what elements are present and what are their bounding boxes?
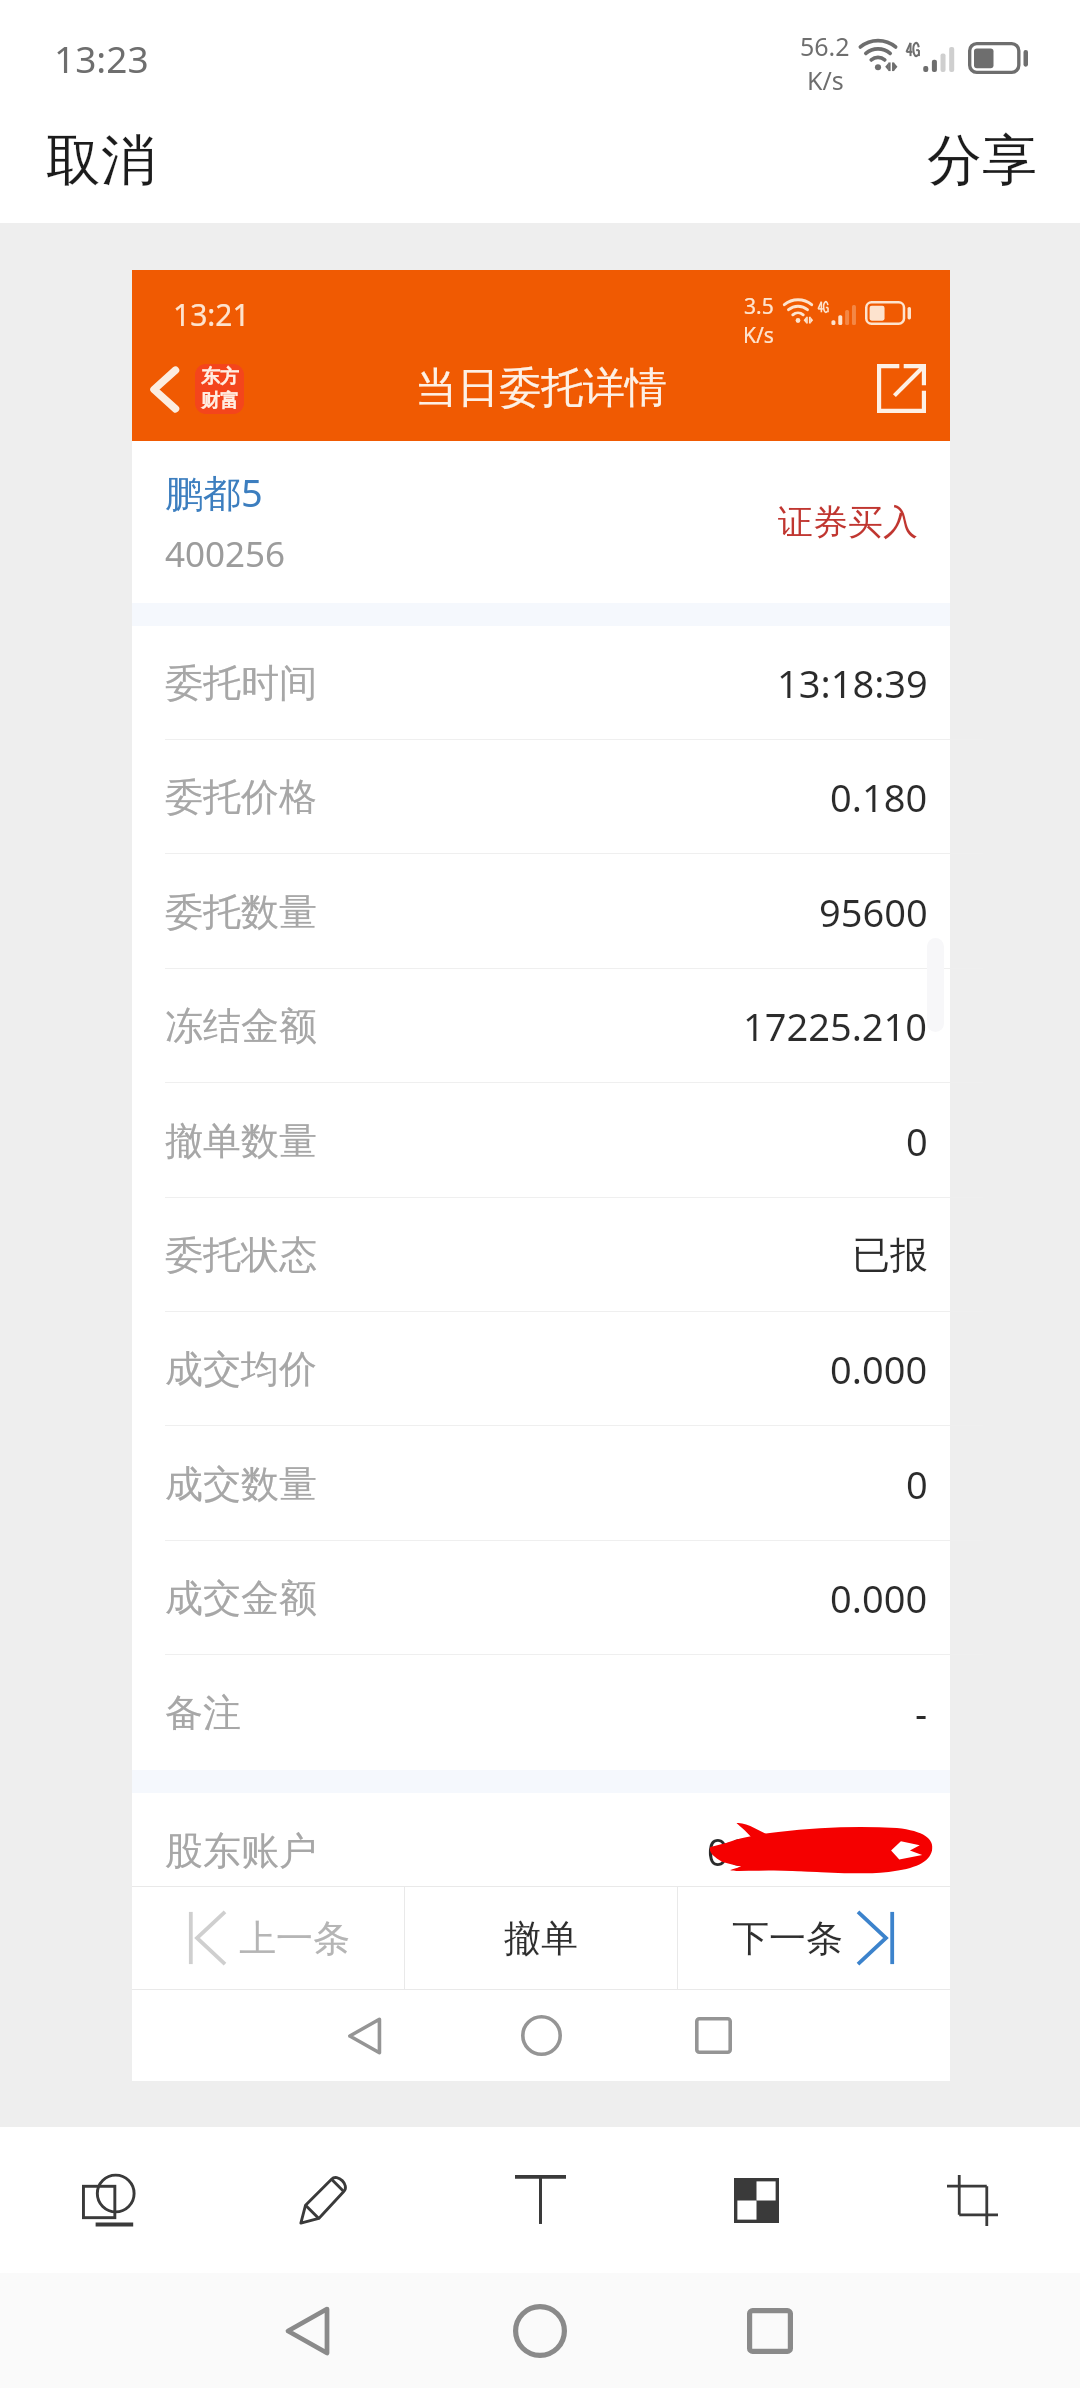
staticText: 13:18:39 [777,657,928,709]
button[interactable]: Crop [864,2127,1080,2273]
staticText: 委托价格 [165,773,317,821]
button[interactable]: Shapes [0,2127,216,2273]
staticText: 13:21 [173,294,250,335]
staticText: 撤单数量 [165,1117,317,1165]
staticText: 股东账户 [165,1827,317,1875]
staticText: 东方 [201,365,239,389]
staticText: 08 [707,1825,751,1877]
staticText: 56.2 [800,29,850,63]
staticText: 分享 [927,126,1037,195]
staticText: 0.000 [830,1572,928,1624]
button[interactable]: 下一条 [678,1887,950,1989]
staticText: 冻结金额 [165,1002,317,1050]
button[interactable]: Back [257,2280,359,2382]
staticText: 17225.210 [743,1000,928,1052]
staticText: 财富 [201,389,239,413]
button[interactable]: Share [861,352,950,425]
staticText: 0 [906,1115,928,1167]
staticText: 备注 [165,1689,241,1737]
staticText: 0 [906,1458,928,1510]
staticText: 成交数量 [165,1460,317,1508]
staticText: 鹏都5 [165,466,263,518]
button[interactable]: Recents [721,2282,819,2380]
staticText: 下一条 [732,1915,843,1962]
staticText: 13:23 [54,33,149,83]
button[interactable]: Home [487,2278,593,2384]
staticText: 成交金额 [165,1574,317,1622]
staticText: 取消 [46,126,156,195]
button[interactable]: 取消 [8,112,194,209]
button[interactable]: Back [132,356,254,422]
staticText: 委托状态 [165,1231,317,1279]
staticText: 400256 [165,530,286,578]
button[interactable]: Draw [216,2127,432,2273]
staticText: 已报 [852,1231,928,1279]
button[interactable]: Text [432,2127,648,2273]
staticText: 3.5 [744,292,774,321]
button[interactable]: Mosaic [648,2127,864,2273]
staticText: 0.000 [830,1343,928,1395]
staticText: 上一条 [239,1915,350,1962]
staticText: K/s [743,321,774,350]
staticText: 撤单 [504,1915,578,1962]
button[interactable]: 分享 [889,112,1075,209]
staticText: 成交均价 [165,1345,317,1393]
staticText: 证券买入 [778,500,918,544]
button[interactable]: 上一条 [132,1887,404,1989]
staticText: 当日委托详情 [415,362,667,415]
staticText: 委托数量 [165,888,317,936]
staticText: 委托时间 [165,659,317,707]
staticText: K/s [807,63,844,97]
button[interactable]: 撤单 [405,1887,677,1989]
staticText: 0.180 [830,771,928,823]
staticText: 95600 [819,886,928,938]
staticText: - [915,1687,928,1739]
